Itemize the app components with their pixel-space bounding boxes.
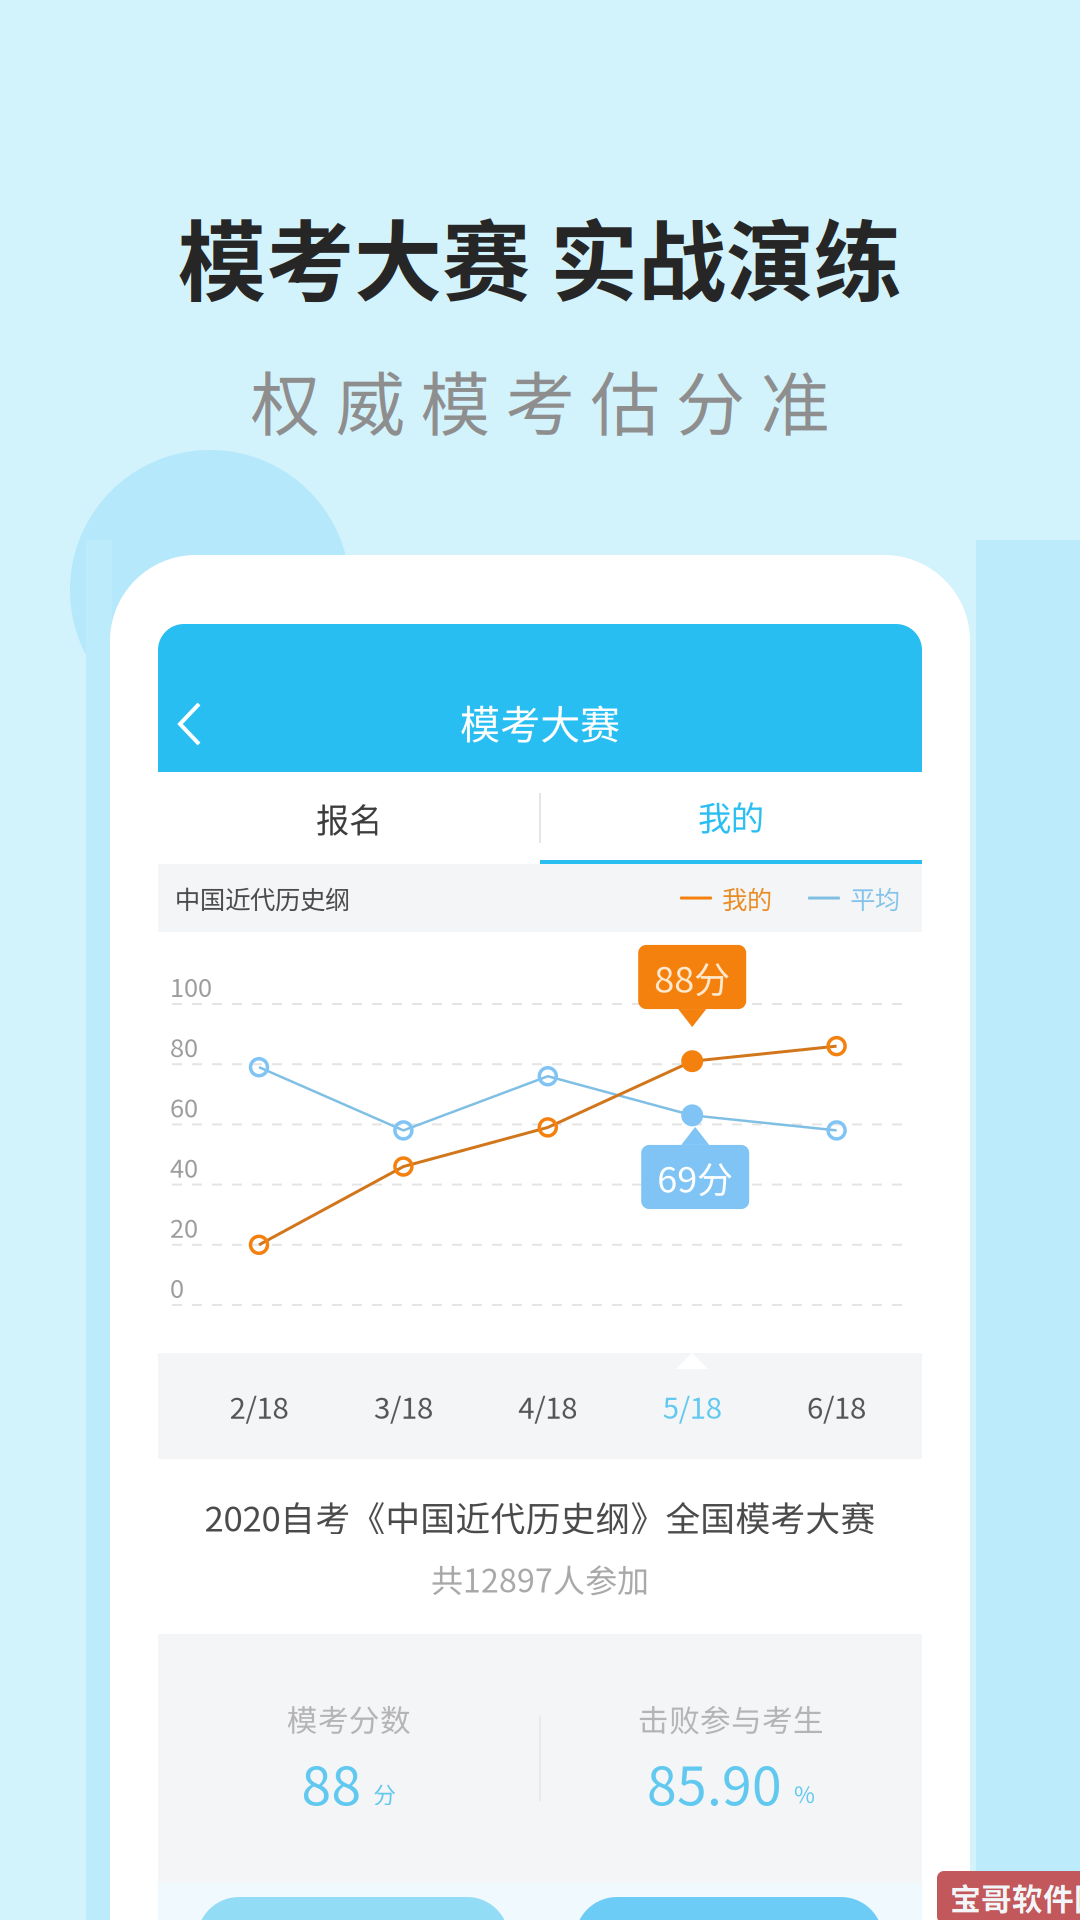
staticText: 中国近代历史纲 — [175, 880, 350, 916]
staticText: 4/18 — [518, 1385, 577, 1427]
staticText: 88 — [301, 1744, 361, 1821]
button[interactable]: 返回 — [158, 634, 229, 762]
button[interactable]: 试卷解析 — [575, 1897, 883, 1920]
staticText: 宝哥软件园 — [950, 1875, 1080, 1919]
staticText: 击败参与考生 — [638, 1696, 824, 1741]
staticText: 88分 — [654, 951, 730, 1003]
staticText: 分 — [373, 1777, 396, 1810]
staticText: 40 — [170, 1148, 198, 1185]
staticText: 20 — [170, 1208, 198, 1245]
staticText: 5/18 — [663, 1385, 722, 1427]
staticText: 报名 — [316, 794, 382, 842]
staticText: 平均 — [850, 880, 900, 916]
staticText: 80 — [170, 1028, 198, 1065]
staticText: 我的 — [698, 792, 764, 840]
staticText: 模考大赛 实战演练 — [178, 192, 902, 319]
staticText: 共12897人参加 — [431, 1555, 649, 1602]
button[interactable]: 我的 — [540, 772, 922, 864]
button[interactable]: 2/18 — [187, 1353, 331, 1459]
button[interactable]: 数据报告 — [197, 1897, 509, 1920]
staticText: 6/18 — [807, 1385, 866, 1427]
button[interactable]: 3/18 — [331, 1353, 475, 1459]
staticText: 权 威 模 考 估 分 准 — [250, 349, 829, 450]
staticText: 2/18 — [229, 1385, 288, 1427]
staticText: 60 — [170, 1088, 198, 1125]
button[interactable]: 4/18 — [476, 1353, 620, 1459]
button[interactable]: 报名 — [158, 772, 540, 864]
staticText: 3/18 — [374, 1385, 433, 1427]
staticText: 69分 — [657, 1151, 733, 1203]
staticText: 2020自考《中国近代历史纲》全国模考大赛 — [204, 1491, 875, 1541]
staticText: 模考大赛 — [460, 693, 620, 751]
button[interactable]: 5/18 — [620, 1353, 764, 1459]
staticText: 85.90 — [647, 1744, 782, 1821]
button[interactable]: 6/18 — [765, 1353, 909, 1459]
staticText: 100 — [170, 968, 212, 1004]
staticText: 我的 — [722, 880, 772, 916]
staticText: 0 — [170, 1269, 184, 1305]
staticText: 模考分数 — [287, 1696, 411, 1741]
staticText: % — [794, 1777, 815, 1810]
